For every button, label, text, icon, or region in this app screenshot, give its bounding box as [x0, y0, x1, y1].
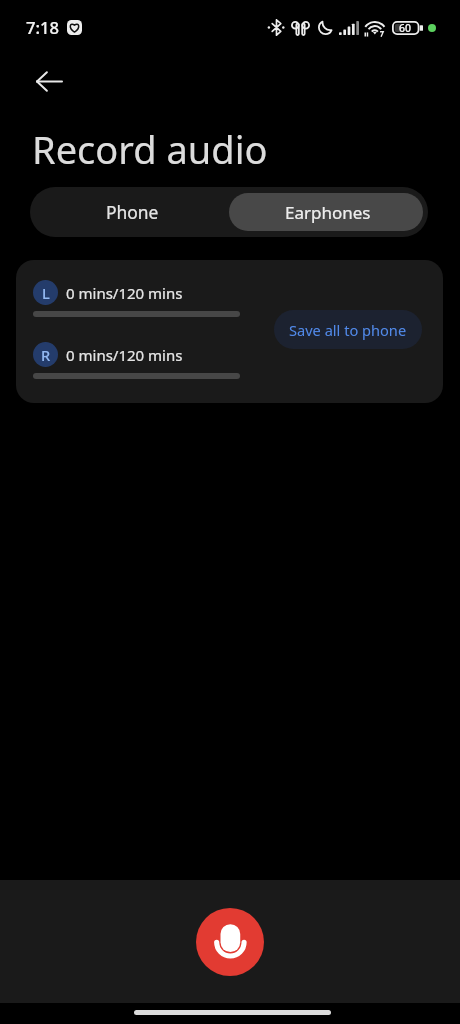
staticText: 0 mins/120 mins — [66, 345, 183, 365]
button[interactable]: Save all to phone — [274, 310, 422, 349]
staticText: R — [41, 345, 51, 365]
staticText: Save all to phone — [289, 320, 407, 340]
staticText: L — [42, 283, 50, 303]
button[interactable]: Phone — [35, 193, 229, 231]
button[interactable]: Back — [25, 57, 73, 105]
button[interactable]: Record — [196, 908, 264, 976]
staticText: 60 — [399, 21, 412, 35]
staticText: Record audio — [32, 123, 268, 175]
staticText: 7:18 — [26, 16, 59, 39]
staticText: 0 mins/120 mins — [66, 283, 183, 303]
staticText: Phone — [106, 200, 159, 224]
staticText: Earphones — [285, 201, 371, 224]
button[interactable]: Earphones — [229, 193, 423, 231]
